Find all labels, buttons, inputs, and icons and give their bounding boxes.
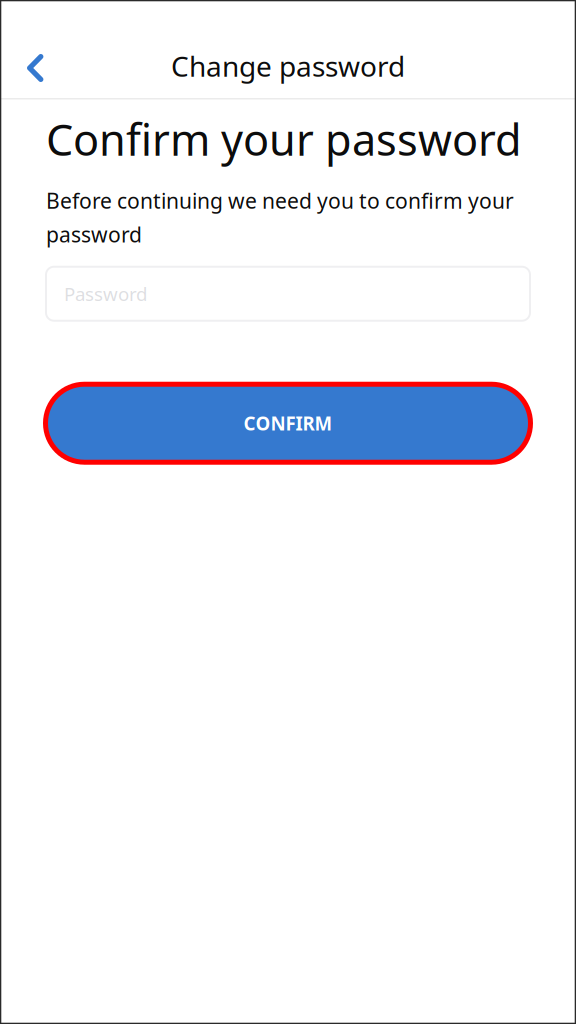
button[interactable]: Back [0, 0, 66, 98]
staticText: password [46, 220, 142, 249]
staticText: Password [64, 281, 147, 306]
button[interactable]: CONFIRM [46, 387, 530, 460]
staticText: Change password [171, 47, 405, 85]
staticText: CONFIRM [243, 411, 332, 436]
staticText: Confirm your password [46, 109, 522, 168]
button[interactable]: Password [46, 267, 530, 321]
staticText: Before continuing we need you to confirm… [46, 186, 514, 215]
